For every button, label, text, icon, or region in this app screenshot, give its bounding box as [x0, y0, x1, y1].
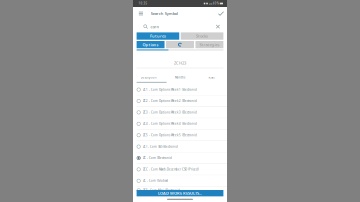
staticText: corn	[150, 24, 158, 29]
button[interactable]: Stocks	[181, 32, 223, 40]
button[interactable]: ZC4 - Corn Options Week 4 (Electronic)	[133, 118, 227, 130]
staticText: Search Symbol	[151, 11, 178, 16]
button[interactable]: ZC - Corn (Globex)	[133, 175, 227, 187]
staticText: ZC - Corn (Electronic)	[143, 156, 172, 160]
staticText: Stocks	[196, 33, 208, 39]
button[interactable]: ZC1 - Corn Options Week 1 (Electronic)	[133, 84, 227, 95]
button[interactable]: Futures	[137, 32, 179, 40]
staticText: ZC2 - Corn Options Week 2 (Electronic)	[143, 99, 197, 103]
staticText: ZCE - Corn Mini (Electronic)	[143, 189, 180, 192]
staticText: Months	[175, 76, 185, 79]
button[interactable]: ZC2 - Corn Options Week 2 (Electronic)	[133, 95, 227, 107]
button[interactable]: ZCT - Corn TAS (Electronic)	[133, 141, 227, 152]
staticText: ZC - Corn (Globex)	[143, 179, 168, 182]
button[interactable]: LOAD MORE RESULTS...	[137, 190, 223, 197]
staticText: ZC1 - Corn Options Week 1 (Electronic)	[143, 88, 197, 91]
button[interactable]: ZCC - Corn March-December CSO (Priced)	[133, 164, 227, 175]
button[interactable]	[166, 41, 194, 48]
staticText: Futures	[150, 33, 166, 39]
button[interactable]: Years	[196, 76, 227, 79]
button[interactable]: ZC3 - Corn Options Week 3 (Electronic)	[133, 107, 227, 118]
button[interactable]: Confirm	[215, 7, 227, 20]
button[interactable]: Months	[164, 76, 196, 79]
staticText: Description	[141, 76, 157, 79]
staticText: ZC3 - Corn Options Week 3 (Electronic)	[143, 111, 197, 114]
staticText: 40%	[213, 2, 219, 5]
button[interactable]: Description	[133, 76, 164, 79]
staticText: 10:35	[138, 2, 147, 5]
staticText: ZCC - Corn March-December CSO (Priced)	[143, 168, 199, 171]
staticText: ZCH23	[174, 60, 186, 66]
button[interactable]: Strategies	[195, 41, 223, 48]
staticText: ZCT - Corn TAS (Electronic)	[143, 145, 178, 148]
button[interactable]: ZCE - Corn Mini (Electronic)	[133, 187, 227, 198]
staticText: Years	[208, 76, 214, 79]
button[interactable]: Clear search	[213, 22, 222, 31]
button[interactable]: ZC5 - Corn Options Week 5 (Electronic)	[133, 130, 227, 141]
button[interactable]: ZC - Corn (Electronic)	[133, 152, 227, 164]
staticText: ZC4 - Corn Options Week 4 (Electronic)	[143, 122, 197, 125]
staticText: Options	[143, 42, 159, 47]
staticText: ZC5 - Corn Options Week 5 (Electronic)	[143, 133, 197, 137]
staticText: Strategies	[199, 42, 219, 47]
staticText: LOAD MORE RESULTS...	[158, 191, 202, 196]
staticText: LTE	[209, 2, 212, 5]
button[interactable]: Options	[137, 41, 164, 48]
button[interactable]: Menu	[135, 7, 146, 20]
